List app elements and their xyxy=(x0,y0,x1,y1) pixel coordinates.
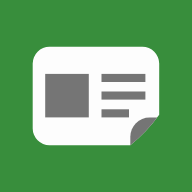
button[interactable]: Google News xyxy=(0,0,192,192)
